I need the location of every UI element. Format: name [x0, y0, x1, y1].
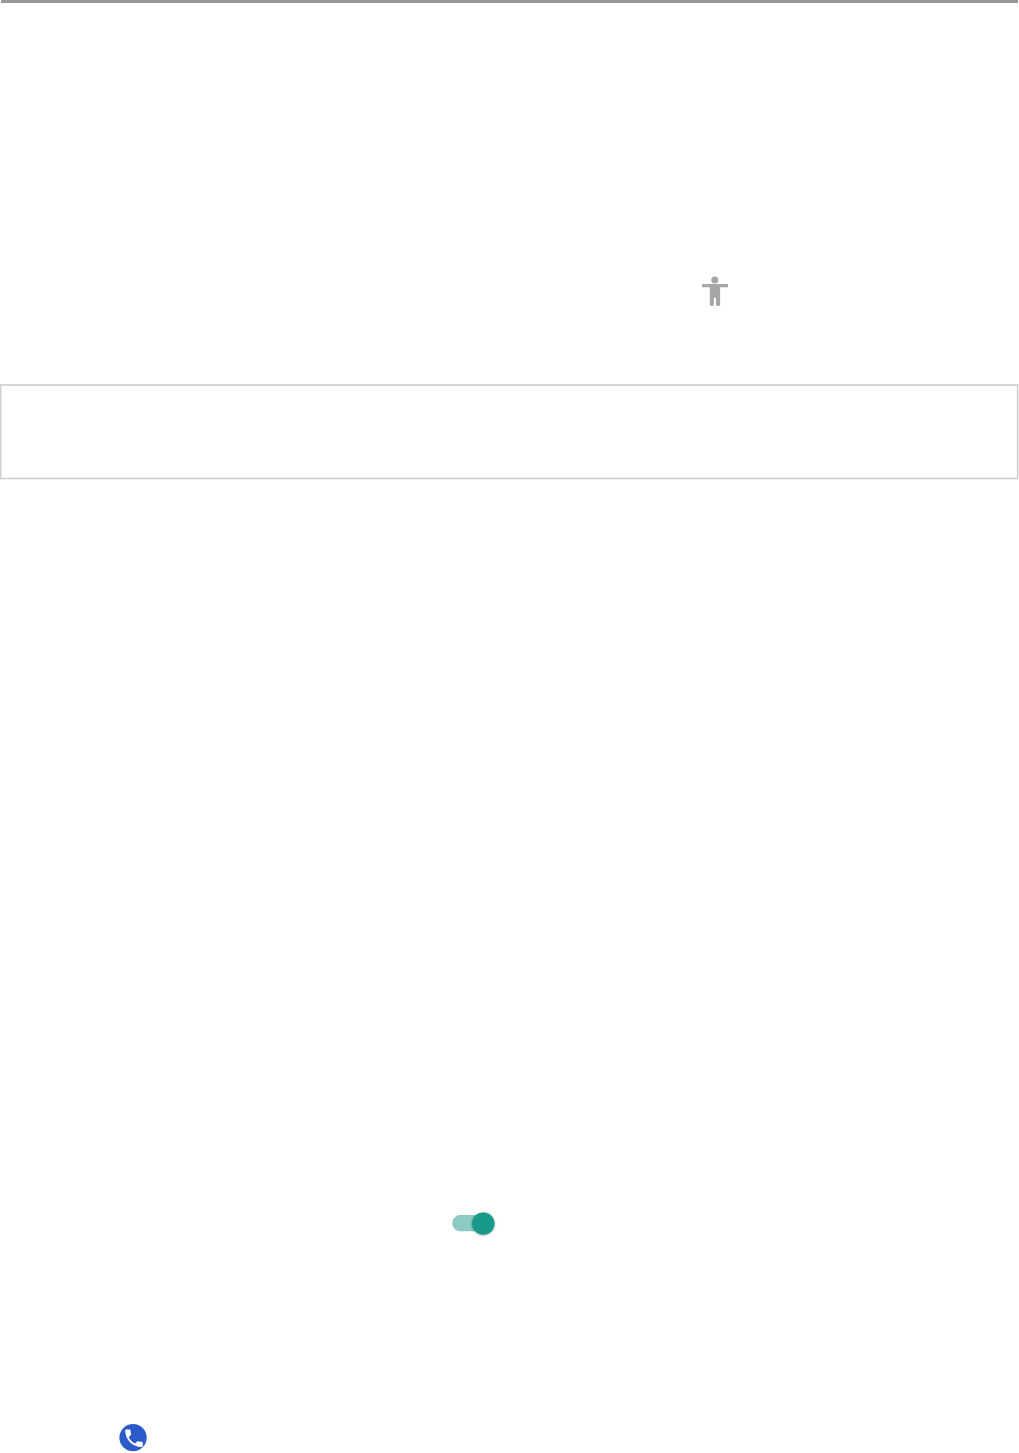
button[interactable]: Accessibility	[700, 274, 730, 308]
button[interactable]: Setting toggle, on	[444, 1205, 504, 1243]
button[interactable]	[0, 384, 1019, 480]
button[interactable]: Phone	[118, 1423, 148, 1453]
